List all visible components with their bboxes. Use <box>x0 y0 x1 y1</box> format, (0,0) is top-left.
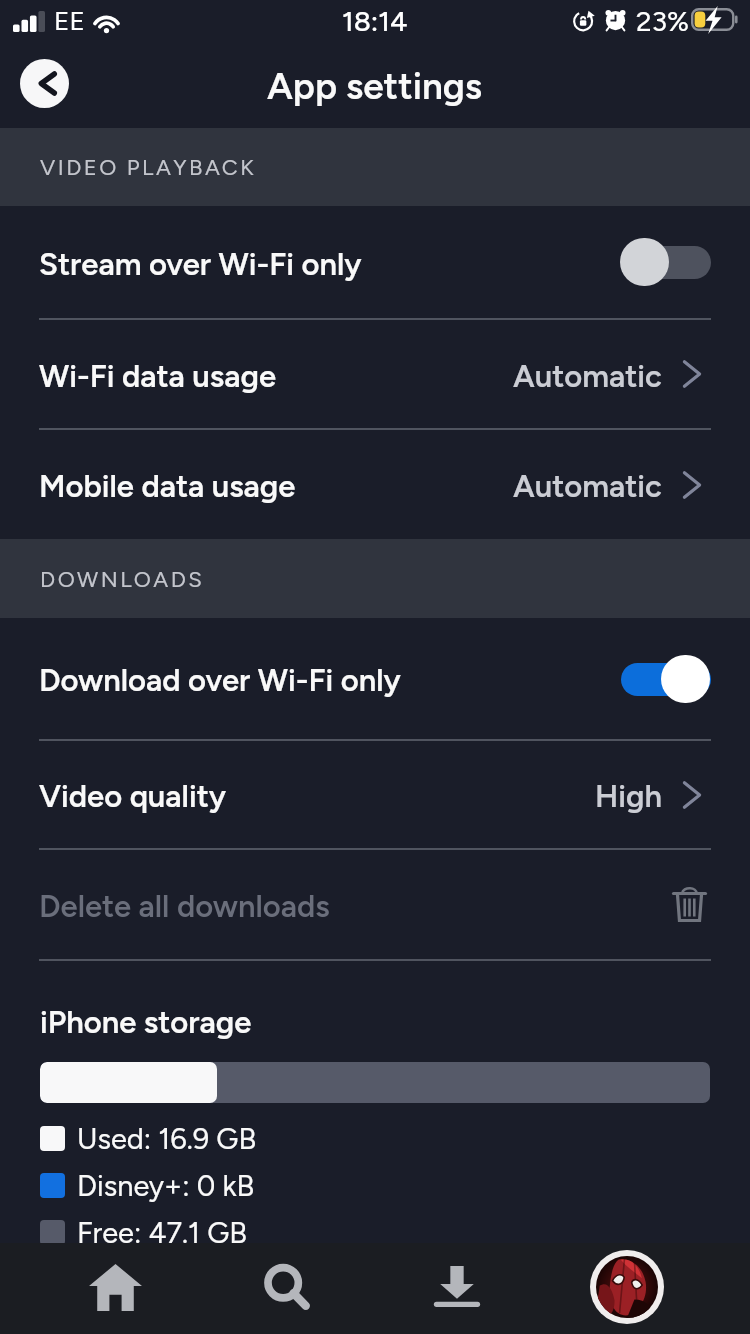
button[interactable]: Home <box>71 1243 159 1331</box>
staticText: Mobile data usage <box>39 468 296 505</box>
button[interactable]: Delete all downloads <box>0 850 750 959</box>
staticText: iPhone storage <box>40 1004 252 1041</box>
staticText: Wi-Fi data usage <box>39 358 276 395</box>
staticText: VIDEO PLAYBACK <box>40 154 257 180</box>
button[interactable]: Wi-Fi data usage <box>0 320 750 428</box>
staticText: Disney+: 0 kB <box>77 1168 255 1203</box>
staticText: App settings <box>267 64 483 108</box>
staticText: Video quality <box>39 778 227 815</box>
staticText: 23% <box>636 4 689 38</box>
button[interactable]: Download over Wi-Fi only <box>0 618 750 739</box>
button[interactable]: Search <box>244 1244 332 1332</box>
staticText: Download over Wi-Fi only <box>39 662 401 699</box>
staticText: 18:14 <box>342 4 408 38</box>
button[interactable]: Stream over Wi-Fi only <box>0 206 750 318</box>
staticText: High <box>595 778 662 815</box>
button[interactable]: Profile <box>583 1243 671 1331</box>
button[interactable]: Downloads <box>413 1242 501 1330</box>
staticText: Automatic <box>513 468 662 505</box>
staticText: Automatic <box>513 358 662 395</box>
button[interactable]: Video quality <box>0 741 750 848</box>
button[interactable]: Back <box>20 59 69 108</box>
button[interactable]: Mobile data usage <box>0 430 750 539</box>
staticText: Delete all downloads <box>39 888 330 925</box>
staticText: Stream over Wi-Fi only <box>39 246 362 283</box>
staticText: Free: 47.1 GB <box>77 1215 247 1250</box>
staticText: DOWNLOADS <box>40 566 205 592</box>
staticText: Used: 16.9 GB <box>77 1121 257 1156</box>
staticText: EE <box>54 5 85 36</box>
